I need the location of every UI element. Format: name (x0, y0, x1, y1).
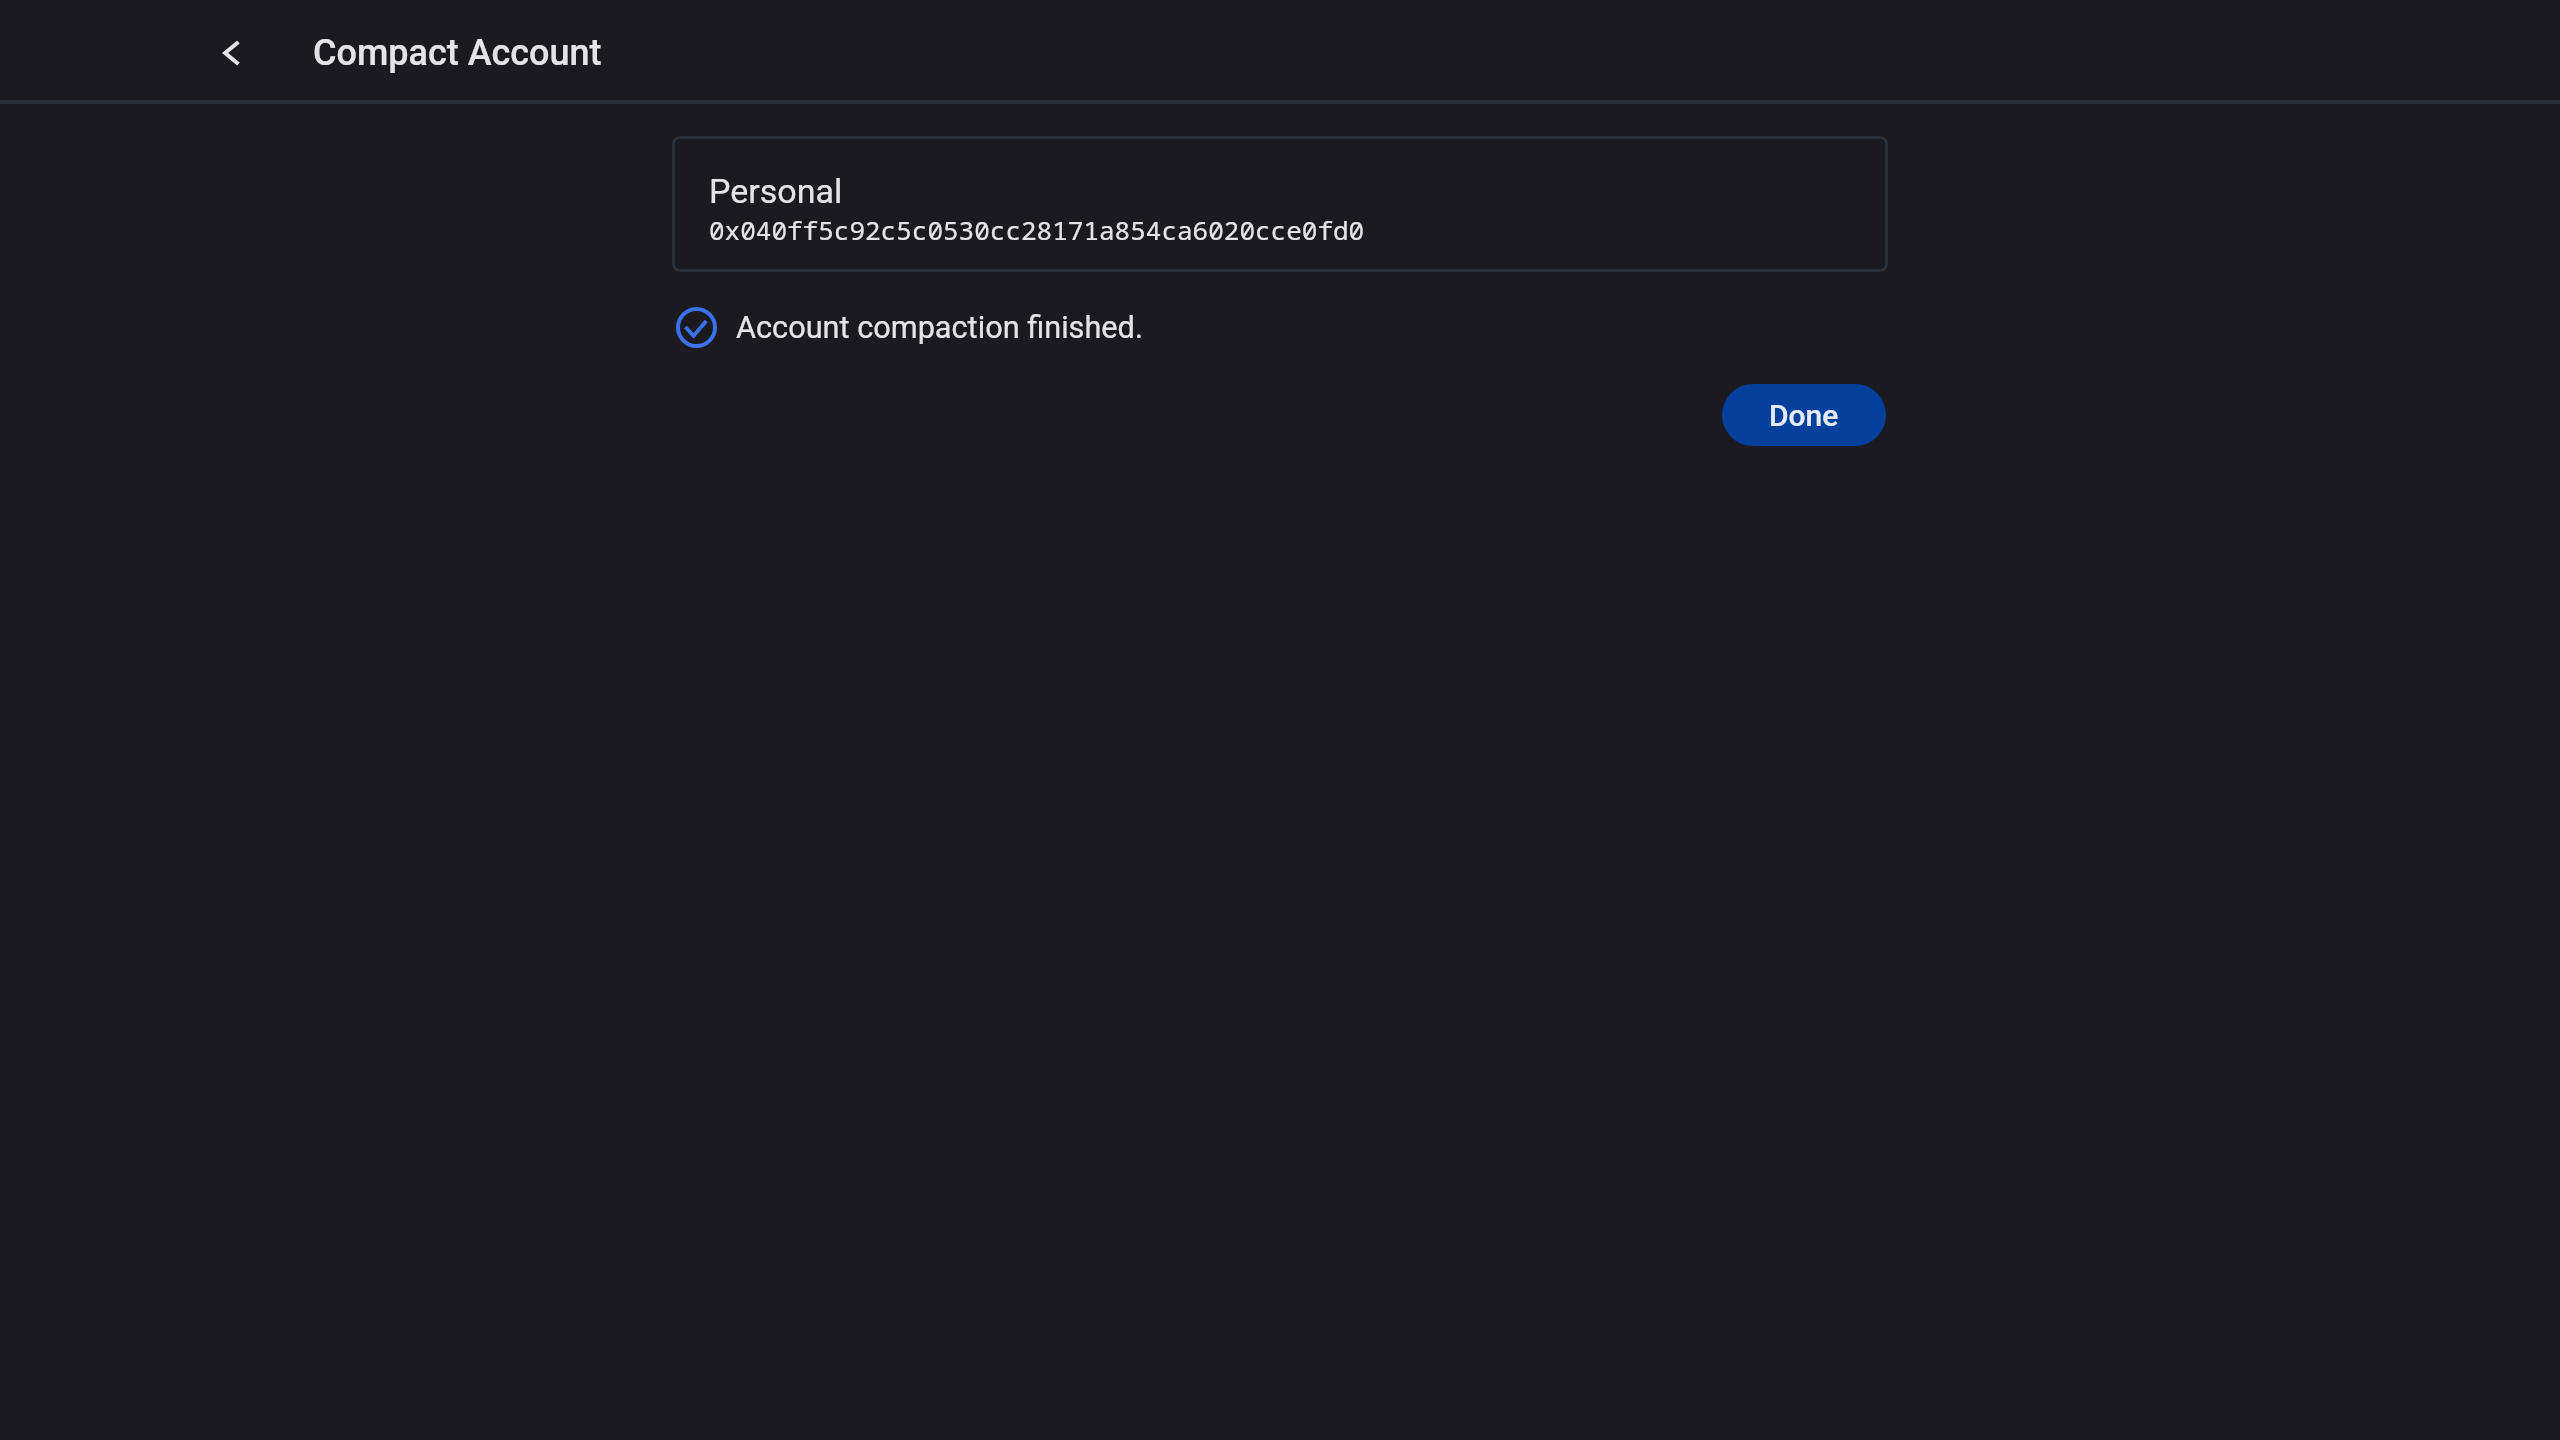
staticText: Compact Account (313, 32, 602, 74)
staticText: 0x040ff5c92c5c0530cc28171a854ca6020cce0f… (709, 212, 1365, 247)
staticText: Personal (709, 171, 843, 211)
button[interactable]: Back (199, 21, 263, 85)
button[interactable]: Done (1722, 384, 1886, 446)
staticText: Done (1769, 398, 1839, 433)
other: Success (676, 307, 717, 348)
staticText: Account compaction finished. (736, 310, 1144, 346)
button[interactable]: Personal (672, 136, 1888, 272)
